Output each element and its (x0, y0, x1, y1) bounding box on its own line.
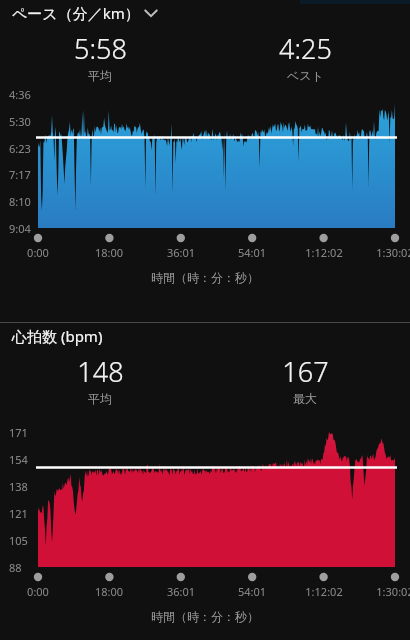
staticText: ペース（分／km） (12, 3, 140, 23)
staticText: 1:12:02 (292, 584, 356, 599)
staticText: 88 (9, 560, 22, 575)
button[interactable]: 心拍数 (bpm) (0, 323, 410, 349)
staticText: 0:00 (6, 245, 70, 260)
staticText: 1:30:02 (363, 245, 410, 260)
staticText: 0:00 (6, 584, 70, 599)
staticText: 121 (9, 506, 28, 521)
staticText: 4:25 (279, 30, 332, 67)
staticText: 138 (9, 479, 28, 494)
staticText: 36:01 (149, 584, 213, 599)
staticText: 時間（時：分：秒） (151, 270, 259, 285)
staticText: 平均 (88, 68, 112, 83)
staticText: 8:10 (9, 194, 31, 209)
staticText: 36:01 (149, 245, 213, 260)
staticText: 5:58 (74, 30, 127, 67)
staticText: 6:23 (9, 141, 31, 156)
staticText: 4:36 (9, 87, 31, 102)
staticText: 心拍数 (bpm) (12, 326, 103, 346)
staticText: 5:30 (9, 114, 31, 129)
button[interactable]: Change metric (140, 2, 162, 24)
staticText: 1:30:02 (363, 584, 410, 599)
staticText: 171 (9, 425, 28, 440)
button[interactable]: ペース（分／km） (0, 0, 410, 26)
staticText: 9:04 (9, 221, 31, 236)
staticText: 54:01 (220, 584, 284, 599)
staticText: 54:01 (220, 245, 284, 260)
staticText: 7:17 (9, 167, 31, 182)
staticText: 148 (77, 353, 124, 390)
staticText: 18:00 (77, 584, 141, 599)
staticText: ベスト (287, 68, 324, 83)
staticText: 154 (9, 452, 28, 467)
staticText: 167 (282, 353, 329, 390)
staticText: 時間（時：分：秒） (151, 609, 259, 624)
staticText: 最大 (293, 391, 317, 406)
staticText: 平均 (88, 391, 112, 406)
staticText: 105 (9, 533, 28, 548)
staticText: 1:12:02 (292, 245, 356, 260)
staticText: 18:00 (77, 245, 141, 260)
